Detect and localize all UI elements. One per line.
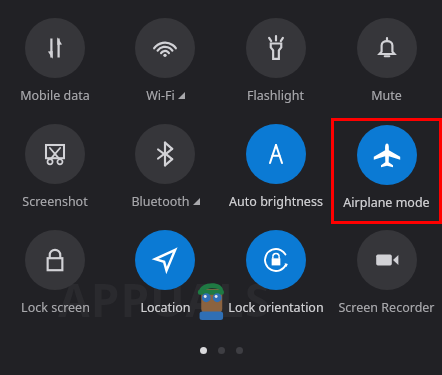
button[interactable]: Wi-Fi — [110, 12, 220, 118]
staticText: Wi-Fi — [146, 87, 175, 104]
button[interactable]: Mobile data — [0, 12, 110, 118]
button[interactable]: Screen Recorder — [331, 224, 442, 330]
button[interactable]: Screenshot — [0, 118, 110, 224]
button[interactable]: Auto brightness — [220, 118, 331, 224]
staticText: Screen Recorder — [338, 299, 435, 316]
button[interactable]: Location — [110, 224, 220, 330]
button[interactable]: Lock screen — [0, 224, 110, 330]
staticText: Airplane mode — [343, 194, 430, 211]
staticText: Mobile data — [20, 87, 90, 104]
staticText: Location — [140, 299, 191, 316]
button[interactable]: Lock orientation — [220, 224, 331, 330]
button[interactable]: Mute — [331, 12, 442, 118]
staticText: Lock screen — [21, 299, 90, 316]
staticText: APPUALS — [58, 268, 272, 331]
button[interactable]: Airplane mode — [331, 118, 442, 224]
staticText: Screenshot — [22, 193, 88, 210]
staticText: Lock orientation — [228, 299, 324, 316]
button[interactable]: Bluetooth — [110, 118, 220, 224]
staticText: Bluetooth — [131, 193, 190, 210]
staticText: Mute — [371, 87, 402, 104]
button[interactable]: Flashlight — [220, 12, 331, 118]
staticText: Flashlight — [247, 87, 304, 104]
staticText: Auto brightness — [229, 193, 323, 210]
